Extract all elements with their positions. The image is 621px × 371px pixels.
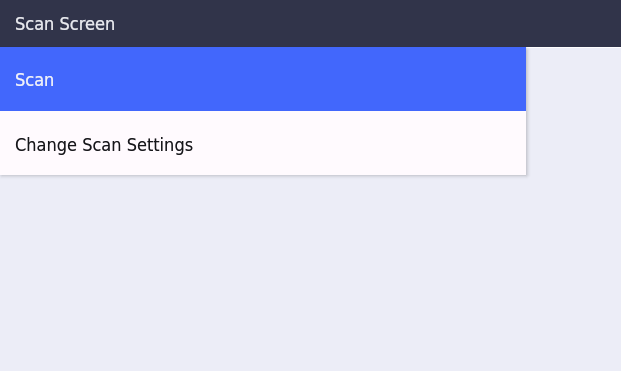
button[interactable]: Scan [0, 47, 526, 111]
button[interactable]: Change Scan Settings [0, 111, 526, 175]
staticText: Scan [15, 69, 55, 90]
staticText: Change Scan Settings [15, 134, 194, 155]
staticText: Scan Screen [15, 13, 116, 34]
